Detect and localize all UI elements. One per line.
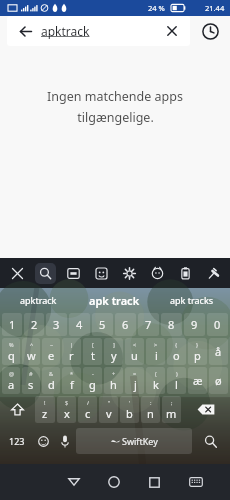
button[interactable]: Back <box>16 22 34 40</box>
staticText: & <box>49 370 54 377</box>
button[interactable]: å <box>209 338 228 365</box>
button[interactable]: Search history <box>197 18 223 44</box>
button[interactable]: Backspace <box>183 396 228 423</box>
button[interactable]: # <box>22 367 40 394</box>
button[interactable]: ! <box>35 396 55 423</box>
staticText: apktrack <box>41 23 90 39</box>
button[interactable]: > <box>146 338 165 365</box>
button[interactable]: / <box>78 396 97 423</box>
staticText: s <box>28 377 34 392</box>
button[interactable]: : <box>141 396 160 423</box>
staticText: tilgængelige. <box>77 109 154 126</box>
button[interactable]: Clipboard <box>171 258 199 288</box>
staticText: i <box>155 348 158 363</box>
button[interactable]: ; <box>162 396 181 423</box>
staticText: ( <box>155 370 157 377</box>
button[interactable]: { <box>167 338 186 365</box>
button[interactable]: 4 <box>69 313 90 336</box>
button[interactable]: GIF <box>59 258 87 288</box>
button[interactable]: Hide keyboard <box>175 464 216 500</box>
button[interactable]: 7 <box>138 313 159 336</box>
staticText: ) <box>176 370 178 377</box>
button[interactable]: ] <box>104 338 123 365</box>
staticText: m <box>166 406 177 421</box>
button[interactable]: apktrack <box>0 288 76 312</box>
button[interactable]: æ <box>188 367 207 394</box>
button[interactable]: Back <box>54 464 94 500</box>
button[interactable]: $ <box>57 396 76 423</box>
button[interactable]: Clear <box>163 22 181 40</box>
button[interactable]: ( <box>146 367 165 394</box>
button[interactable]: SwiftKey <box>76 428 192 454</box>
button[interactable]: Stickers <box>87 258 115 288</box>
button[interactable]: < <box>125 338 144 365</box>
button[interactable]: & <box>42 367 60 394</box>
button[interactable]: Home <box>94 464 134 500</box>
button[interactable]: @ <box>2 367 20 394</box>
button[interactable]: " <box>99 396 118 423</box>
staticText: j <box>134 377 137 392</box>
staticText: æ <box>193 373 203 388</box>
button[interactable]: 6 <box>115 313 136 336</box>
staticText: / <box>87 399 90 406</box>
staticText: < <box>133 341 137 348</box>
button[interactable]: Settings <box>115 258 143 288</box>
staticText: 21.44 <box>205 3 225 13</box>
staticText: a <box>8 377 15 392</box>
button[interactable]: % <box>2 338 20 365</box>
staticText: 7 <box>145 317 152 332</box>
staticText: ' <box>129 399 131 406</box>
button[interactable]: 0 <box>207 313 228 336</box>
staticText: 6 <box>122 317 129 332</box>
button[interactable]: 2 <box>24 313 44 336</box>
button[interactable]: ) <box>167 367 186 394</box>
staticText: - <box>92 370 94 377</box>
staticText: ] <box>113 341 115 348</box>
staticText: Ingen matchende apps <box>47 88 183 105</box>
button[interactable]: Search <box>192 424 228 458</box>
button[interactable]: 8 <box>161 313 182 336</box>
button[interactable]: 9 <box>184 313 205 336</box>
button[interactable]: apk tracks <box>153 288 230 312</box>
staticText: z <box>42 406 48 421</box>
button[interactable]: ^ <box>22 338 40 365</box>
button[interactable]: ' <box>120 396 139 423</box>
button[interactable]: apk track <box>76 288 153 312</box>
button[interactable]: - <box>83 367 102 394</box>
button[interactable]: Emoji <box>32 424 54 458</box>
button[interactable]: * <box>62 367 81 394</box>
button[interactable]: ø <box>209 367 228 394</box>
button[interactable]: Search <box>31 258 59 288</box>
button[interactable]: 5 <box>92 313 113 336</box>
button[interactable]: Themes <box>143 258 171 288</box>
button[interactable]: Pin <box>199 258 227 288</box>
staticText: % <box>9 341 14 348</box>
staticText: { <box>175 341 178 348</box>
button[interactable]: } <box>188 338 207 365</box>
staticText: k <box>153 377 159 392</box>
button[interactable]: ~ <box>42 338 60 365</box>
button[interactable]: [ <box>83 338 102 365</box>
button[interactable]: 1 <box>2 313 22 336</box>
staticText: å <box>215 344 222 359</box>
staticText: x <box>64 406 70 421</box>
staticText: h <box>110 377 117 392</box>
button[interactable]: Shift <box>2 396 33 423</box>
button[interactable]: Close <box>3 258 31 288</box>
staticText: @ <box>9 370 14 377</box>
button[interactable]: | <box>62 338 81 365</box>
button[interactable]: 123 <box>2 424 32 458</box>
staticText: 5 <box>99 317 106 332</box>
button[interactable]: Back <box>7 16 190 46</box>
staticText: b <box>126 406 133 421</box>
staticText: n <box>147 406 154 421</box>
button[interactable]: Voice input <box>54 424 76 458</box>
staticText: + <box>112 370 116 377</box>
staticText: ^ <box>30 341 34 348</box>
button[interactable]: = <box>125 367 144 394</box>
staticText: > <box>154 341 158 348</box>
button[interactable]: Recents <box>134 464 175 500</box>
button[interactable]: + <box>104 367 123 394</box>
staticText: apk track <box>89 293 140 308</box>
button[interactable]: 3 <box>46 313 67 336</box>
